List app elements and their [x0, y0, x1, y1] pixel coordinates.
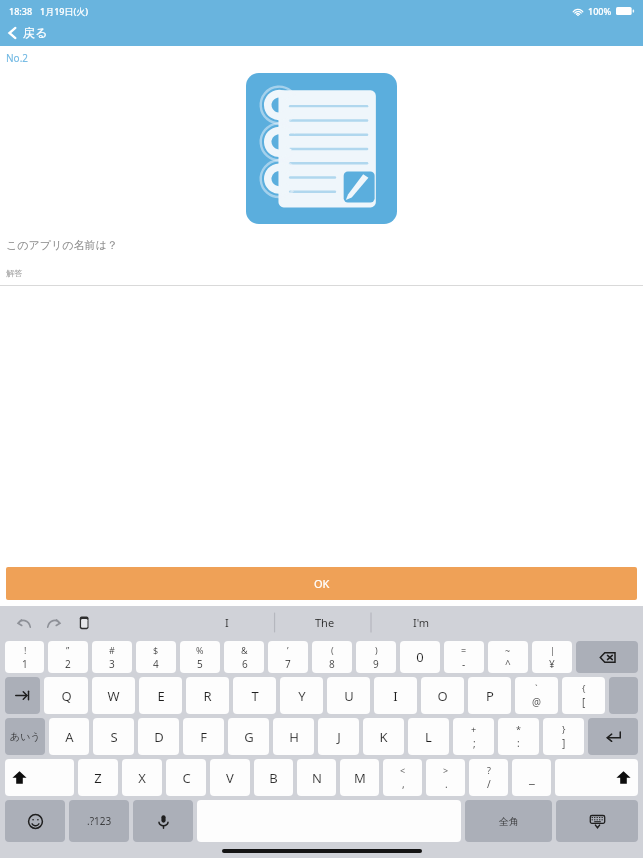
button[interactable]: % — [180, 641, 220, 673]
staticText: F — [200, 728, 207, 746]
button[interactable]: OK — [6, 567, 637, 600]
button[interactable]: A — [49, 718, 89, 755]
button[interactable]: $ — [136, 641, 176, 673]
button[interactable]: I'm — [373, 606, 469, 639]
staticText: I'm — [413, 615, 430, 630]
staticText: P — [486, 687, 494, 705]
button[interactable]: S — [93, 718, 134, 755]
button[interactable]: + — [453, 718, 494, 755]
staticText: Q — [61, 687, 72, 705]
button[interactable]: 全角 — [465, 800, 552, 842]
button[interactable]: | — [532, 641, 572, 673]
button[interactable]: ` — [515, 677, 558, 714]
button[interactable]: Shift — [5, 759, 74, 796]
button[interactable]: L — [408, 718, 449, 755]
button[interactable]: W — [92, 677, 135, 714]
button[interactable]: = — [444, 641, 484, 673]
button[interactable]: ? — [469, 759, 508, 796]
button[interactable]: 戻る — [3, 22, 53, 43]
staticText: } — [562, 723, 566, 735]
staticText: & — [241, 644, 248, 656]
button[interactable]: } — [543, 718, 584, 755]
button[interactable]: Dictation — [133, 800, 193, 842]
button[interactable]: Shift — [555, 759, 638, 796]
button[interactable]: Undo — [12, 611, 36, 635]
button[interactable]: Redo — [42, 611, 66, 635]
button[interactable]: B — [254, 759, 293, 796]
button[interactable]: T — [233, 677, 276, 714]
button[interactable]: & — [224, 641, 264, 673]
staticText: OK — [314, 576, 330, 591]
staticText: $ — [153, 644, 159, 656]
button[interactable]: E — [139, 677, 182, 714]
button[interactable]: { — [562, 677, 605, 714]
button[interactable]: ~ — [488, 641, 528, 673]
button[interactable]: あいう — [5, 718, 45, 755]
button[interactable]: Q — [44, 677, 88, 714]
button[interactable]: > — [426, 759, 465, 796]
button[interactable]: O — [421, 677, 464, 714]
staticText: 8 — [329, 657, 335, 671]
staticText: ? — [487, 764, 491, 776]
button[interactable]: ! — [5, 641, 44, 673]
button[interactable]: V — [210, 759, 250, 796]
button[interactable]: Return — [588, 718, 638, 755]
button[interactable]: # — [92, 641, 132, 673]
staticText: A — [65, 728, 74, 746]
button[interactable]: .?123 — [69, 800, 129, 842]
button[interactable]: X — [122, 759, 162, 796]
staticText: L — [425, 728, 432, 746]
button[interactable]: U — [327, 677, 370, 714]
button[interactable]: I — [374, 677, 417, 714]
button[interactable]: The — [277, 606, 373, 639]
button[interactable]: N — [297, 759, 336, 796]
staticText: The — [315, 615, 335, 630]
staticText: O — [437, 687, 448, 705]
button[interactable]: _ — [512, 759, 551, 796]
staticText: あいう — [10, 730, 41, 743]
button[interactable]: < — [383, 759, 422, 796]
staticText: % — [196, 644, 204, 656]
button[interactable]: 0 — [400, 641, 440, 673]
staticText: 2 — [65, 657, 71, 671]
button[interactable]: Emoji — [5, 800, 65, 842]
button[interactable]: R — [186, 677, 229, 714]
button[interactable]: H — [273, 718, 314, 755]
button[interactable]: K — [363, 718, 404, 755]
button[interactable]: P — [468, 677, 511, 714]
staticText: Y — [298, 687, 306, 705]
button[interactable]: Backspace — [576, 641, 638, 673]
button[interactable]: D — [138, 718, 179, 755]
button[interactable]: ’ — [268, 641, 308, 673]
button[interactable]: Key — [609, 677, 638, 714]
button[interactable]: ( — [312, 641, 352, 673]
button[interactable]: Y — [280, 677, 323, 714]
staticText: 4 — [153, 657, 159, 671]
button[interactable]: Hide keyboard — [556, 800, 638, 842]
staticText: S — [110, 728, 118, 746]
button[interactable]: C — [166, 759, 206, 796]
button[interactable]: Paste — [72, 611, 96, 635]
staticText: * — [516, 723, 521, 735]
button[interactable]: J — [318, 718, 359, 755]
staticText: 0 — [416, 648, 424, 666]
button[interactable]: G — [228, 718, 269, 755]
button[interactable]: Tab — [5, 677, 40, 714]
button[interactable]: * — [498, 718, 539, 755]
button[interactable]: Z — [78, 759, 118, 796]
staticText: 戻る — [23, 25, 48, 40]
staticText: 全角 — [499, 815, 519, 828]
staticText: V — [226, 769, 234, 787]
button[interactable]: ) — [356, 641, 396, 673]
button[interactable]: M — [340, 759, 379, 796]
button[interactable]: ” — [48, 641, 88, 673]
staticText: - — [462, 657, 466, 671]
staticText: 18:38 — [9, 5, 33, 17]
staticText: R — [203, 687, 212, 705]
staticText: J — [337, 728, 341, 746]
button[interactable]: I — [177, 606, 277, 639]
button[interactable]: F — [183, 718, 224, 755]
staticText: ; — [473, 736, 476, 750]
staticText: Z — [94, 769, 102, 787]
